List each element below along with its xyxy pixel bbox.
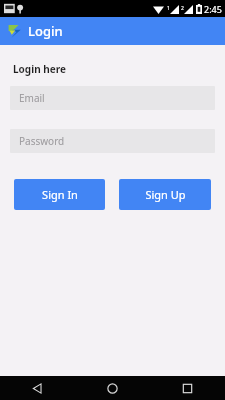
staticText: Password: [19, 134, 65, 148]
button[interactable]: Sign In: [14, 179, 105, 210]
button[interactable]: Sign Up: [119, 179, 211, 210]
staticText: Login here: [13, 62, 66, 76]
staticText: Sign Up: [145, 187, 186, 202]
staticText: 2:45: [204, 3, 222, 15]
button[interactable]: Email: [10, 86, 215, 110]
button[interactable]: Home: [75, 376, 150, 400]
button[interactable]: Recent apps: [150, 376, 225, 400]
button[interactable]: Back: [0, 376, 75, 400]
staticText: Email: [19, 91, 45, 105]
staticText: Sign In: [42, 187, 78, 202]
button[interactable]: Password: [10, 129, 215, 153]
staticText: Login: [28, 22, 63, 40]
staticText: 2: [181, 5, 184, 12]
staticText: 1: [167, 5, 170, 12]
